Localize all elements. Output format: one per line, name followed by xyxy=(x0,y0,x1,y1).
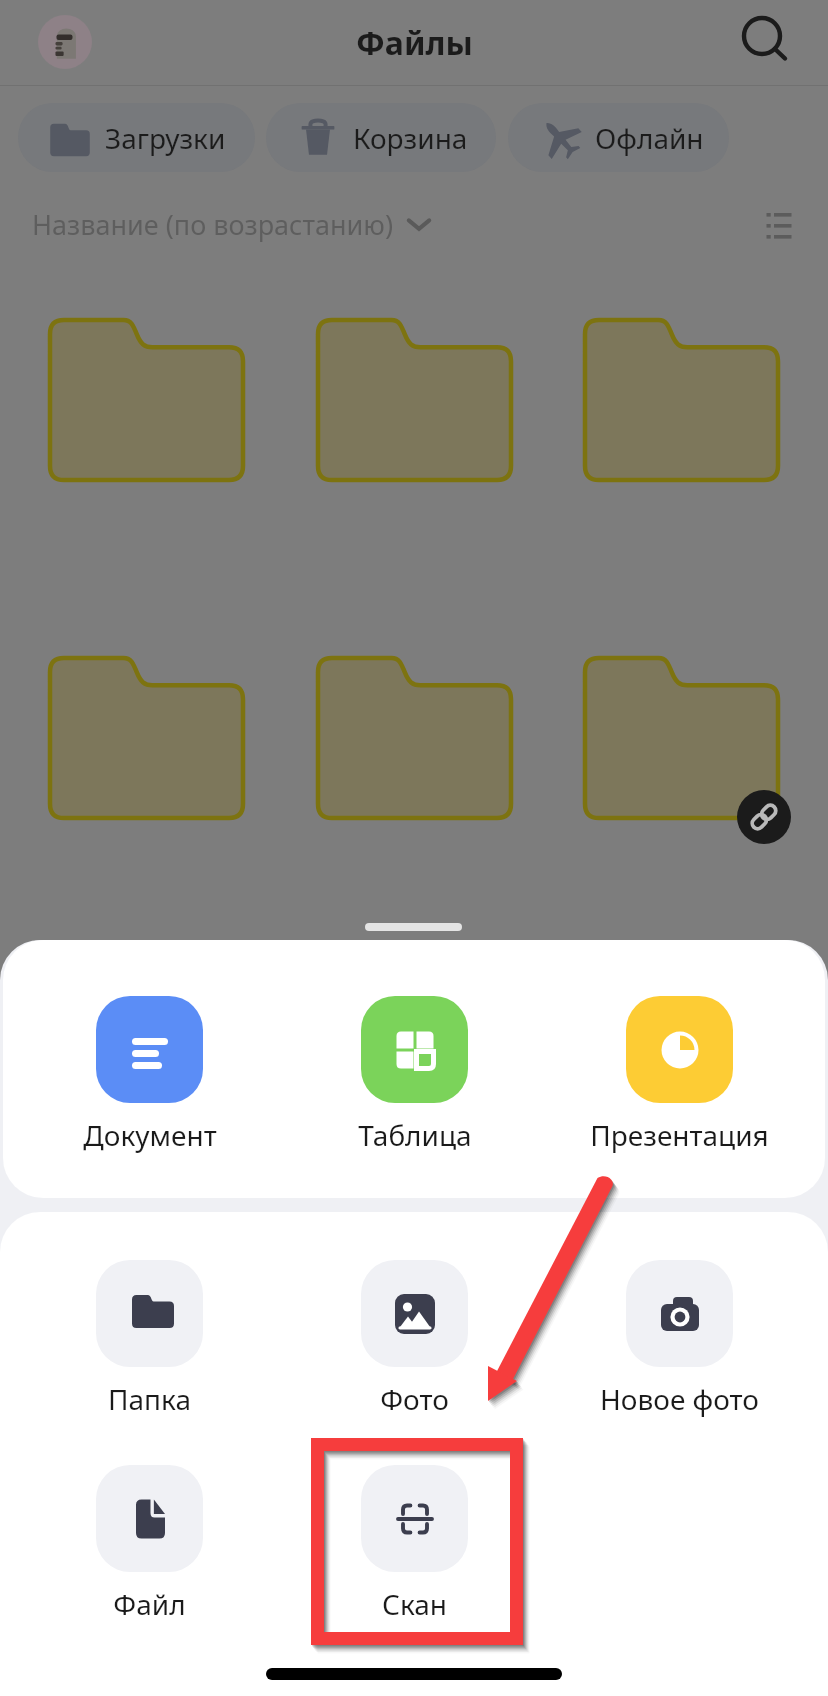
button[interactable]: Корзина xyxy=(266,103,496,172)
staticText: Файл xyxy=(113,1585,186,1623)
button[interactable]: Фото xyxy=(288,1260,541,1418)
staticText: Загрузки xyxy=(105,119,226,157)
staticText: Презентация xyxy=(590,1116,769,1154)
button[interactable]: Folder xyxy=(585,320,778,480)
staticText: Папка xyxy=(108,1380,191,1418)
button[interactable]: Folder xyxy=(318,658,511,818)
button[interactable]: Account xyxy=(38,15,92,69)
button[interactable]: Документ xyxy=(23,996,276,1154)
staticText: Скан xyxy=(382,1585,447,1623)
button[interactable]: Folder xyxy=(318,320,511,480)
staticText: Корзина xyxy=(353,119,468,157)
staticText: Фото xyxy=(380,1380,449,1418)
button[interactable]: Shared link xyxy=(737,790,791,844)
button[interactable]: Папка xyxy=(23,1260,276,1418)
staticText: Офлайн xyxy=(595,119,704,157)
staticText: Файлы xyxy=(356,21,473,65)
staticText: Таблица xyxy=(358,1116,472,1154)
button[interactable]: Скан xyxy=(288,1465,541,1623)
button[interactable]: View options xyxy=(755,200,803,248)
button[interactable]: Презентация xyxy=(553,996,806,1154)
button[interactable]: Загрузки xyxy=(18,103,255,172)
staticText: Новое фото xyxy=(600,1380,759,1418)
button[interactable]: Folder xyxy=(50,320,243,480)
button[interactable]: Файл xyxy=(23,1465,276,1623)
staticText: Документ xyxy=(83,1116,217,1154)
button[interactable]: Folder xyxy=(50,658,243,818)
button[interactable]: Название (по возрастанию) xyxy=(32,203,434,245)
button[interactable]: Офлайн xyxy=(508,103,729,172)
staticText: Название (по возрастанию) xyxy=(32,206,394,243)
button[interactable]: Таблица xyxy=(288,996,541,1154)
button[interactable]: Новое фото xyxy=(553,1260,806,1418)
button[interactable]: Search xyxy=(736,12,796,72)
button[interactable]: Folder xyxy=(585,658,778,818)
